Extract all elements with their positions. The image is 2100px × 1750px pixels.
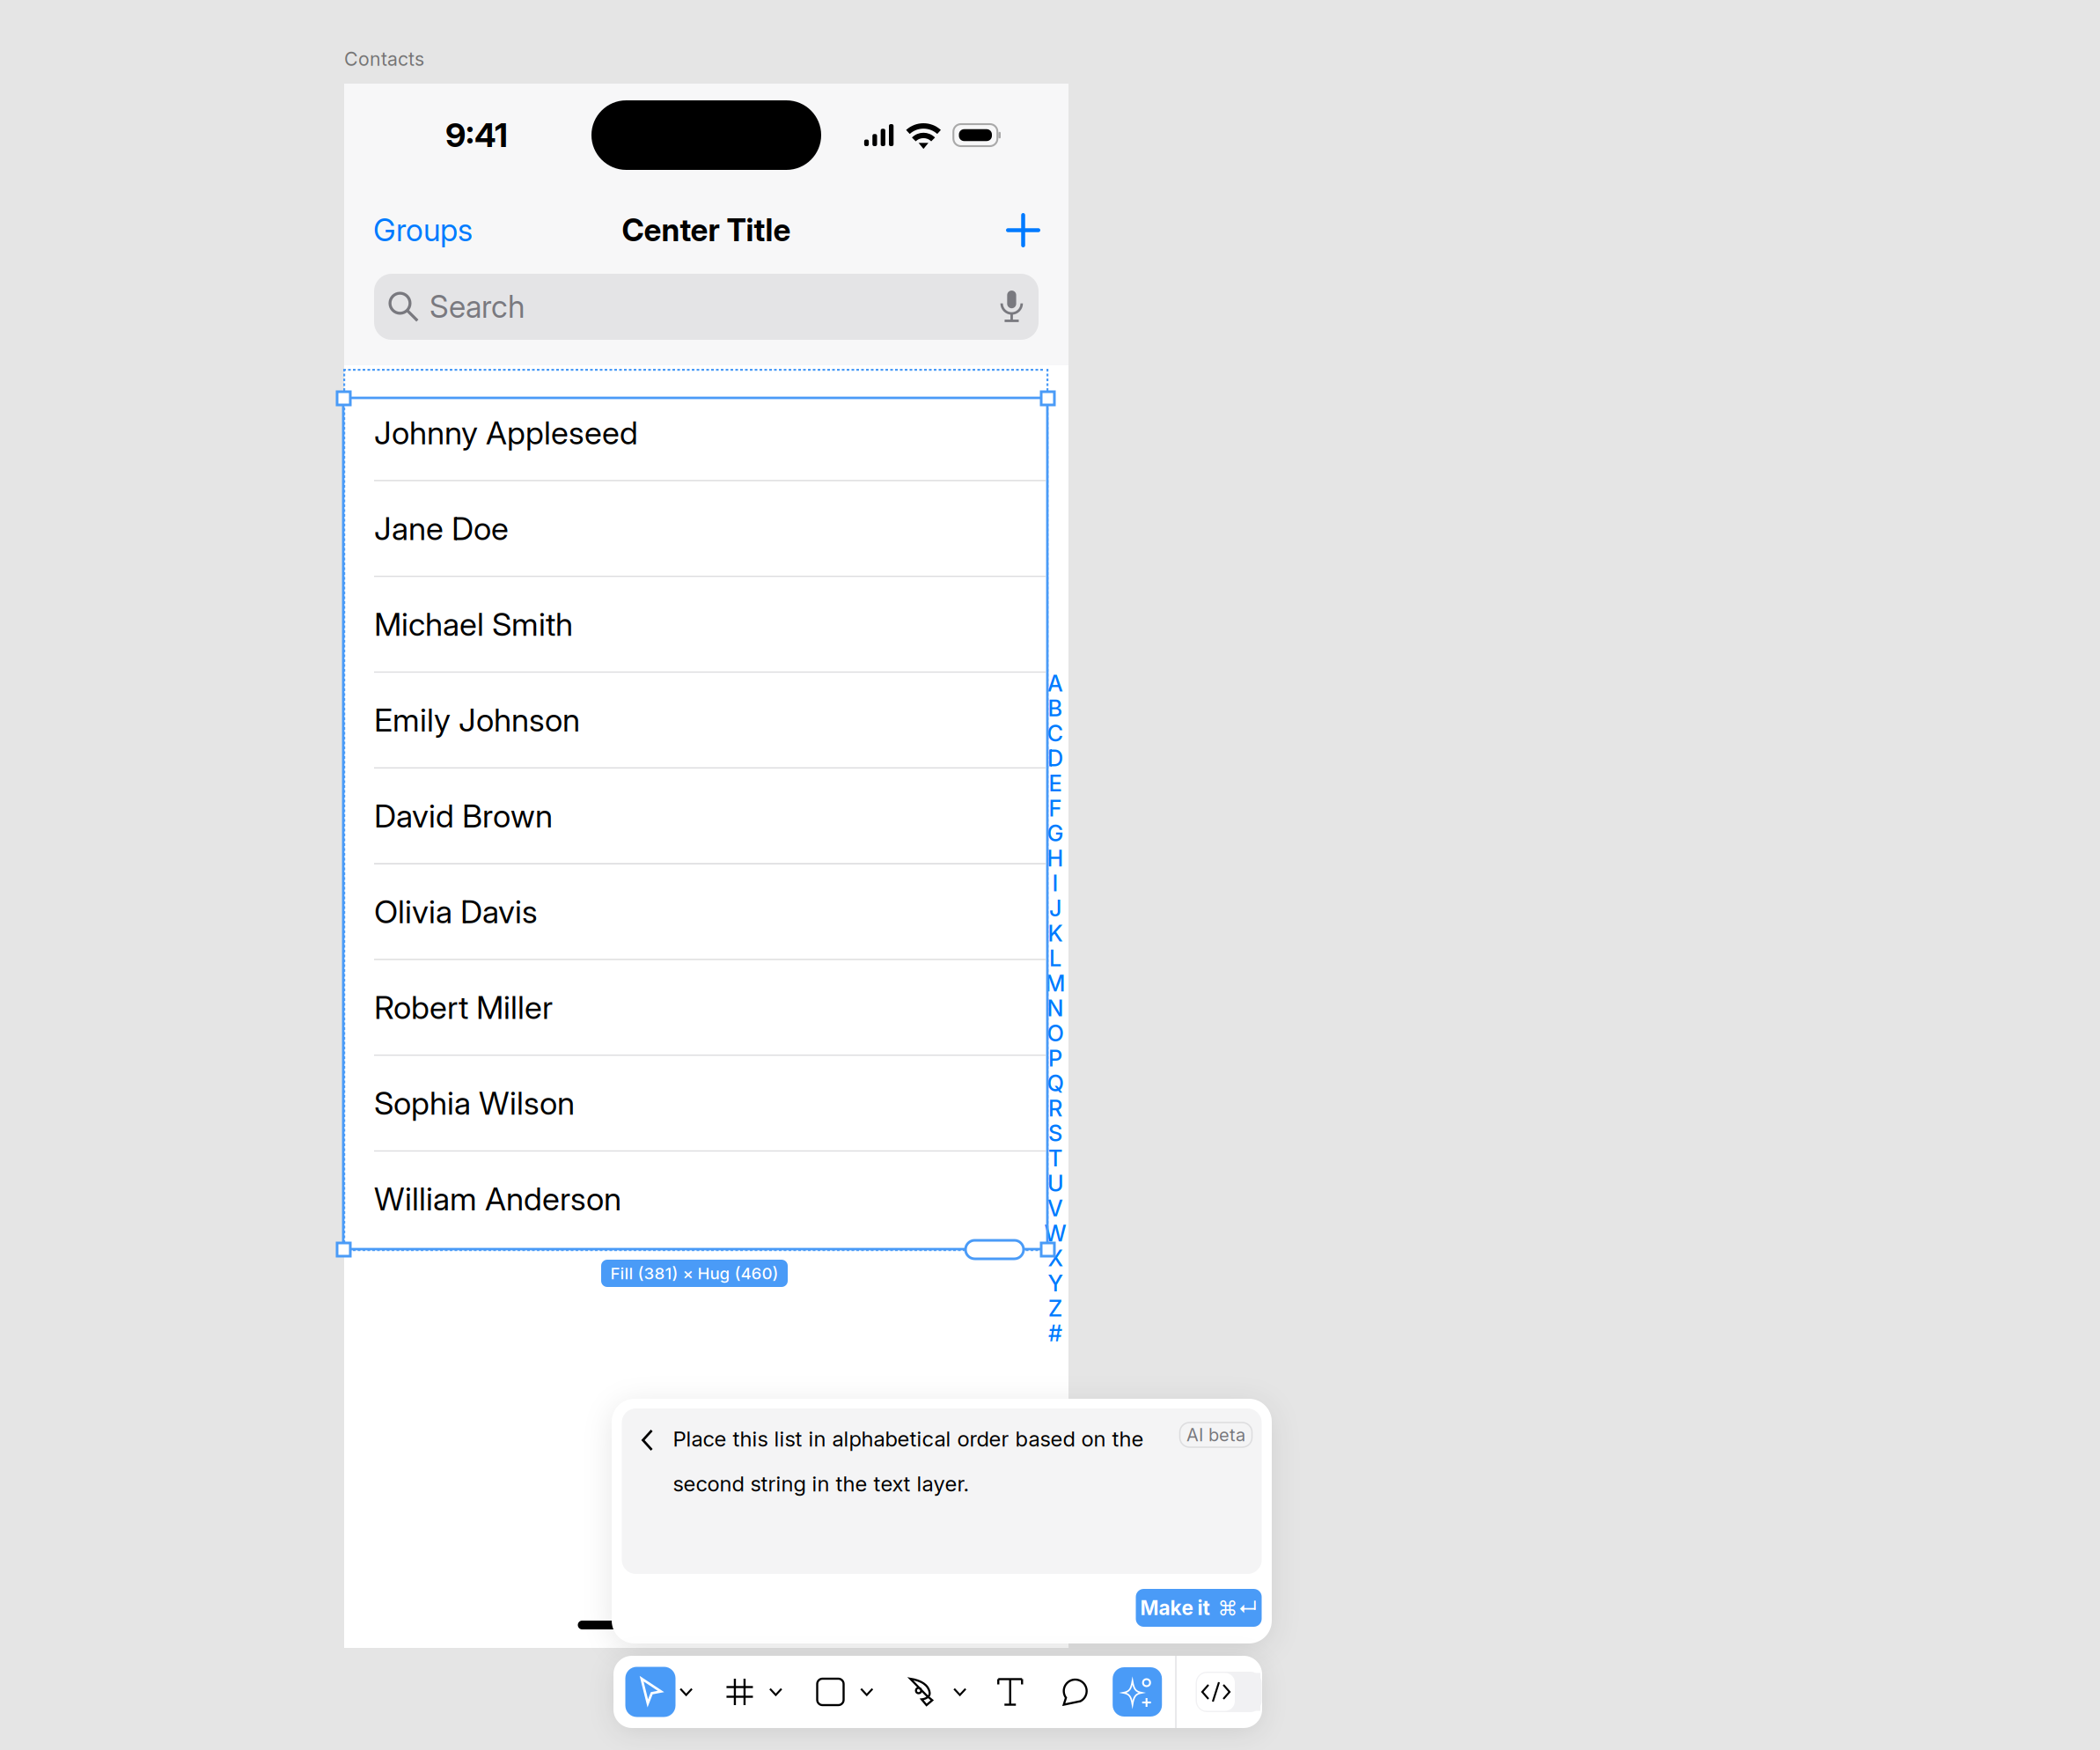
staticText: Center Title [622, 212, 791, 249]
staticText: ⌘↵ [1218, 1596, 1257, 1620]
staticText: K [1048, 920, 1063, 947]
staticText: B [1048, 695, 1063, 722]
staticText: Robert Miller [374, 988, 553, 1027]
staticText: Y [1048, 1270, 1063, 1297]
staticText: Johnny Appleseed [374, 414, 638, 452]
button[interactable]: Olivia Davis [344, 864, 1068, 960]
staticText: Z [1048, 1295, 1062, 1322]
button[interactable]: Robert Miller [344, 960, 1068, 1056]
button[interactable]: William Anderson [344, 1152, 1068, 1248]
staticText: A [1047, 670, 1063, 697]
staticText: Fill (381) × Hug (460) [610, 1263, 778, 1283]
staticText: J [1049, 895, 1061, 922]
button[interactable]: Pen tool options [935, 1656, 967, 1728]
button[interactable]: Frame tool [693, 1656, 753, 1728]
staticText: M [1045, 970, 1065, 997]
staticText: U [1047, 1170, 1063, 1197]
staticText: X [1048, 1245, 1063, 1272]
button[interactable]: Jane Doe [344, 481, 1068, 577]
staticText: David Brown [374, 797, 553, 835]
staticText: second string in the text layer. [673, 1471, 969, 1496]
staticText: Q [1047, 1070, 1064, 1097]
button[interactable]: Shape tool [783, 1656, 844, 1728]
staticText: V [1047, 1195, 1063, 1222]
button[interactable]: Pen tool [874, 1656, 935, 1728]
button[interactable]: Groups [344, 202, 473, 258]
button[interactable]: Add contact [1006, 203, 1068, 257]
staticText: Make it [1140, 1596, 1210, 1620]
staticText: S [1048, 1120, 1062, 1147]
staticText: 9:41 [445, 115, 508, 155]
staticText: Jane Doe [374, 509, 509, 548]
button[interactable]: Frame tool options [753, 1656, 783, 1728]
staticText: N [1047, 995, 1064, 1022]
button[interactable]: David Brown [344, 769, 1068, 864]
staticText: W [1044, 1220, 1066, 1247]
button[interactable]: Emily Johnson [344, 673, 1068, 769]
staticText: Contacts [344, 48, 424, 70]
button[interactable]: Shape tool options [844, 1656, 874, 1728]
staticText: Olivia Davis [374, 892, 538, 931]
button[interactable]: Sophia Wilson [344, 1056, 1068, 1152]
staticText: L [1049, 945, 1061, 972]
button[interactable]: Move tool options [675, 1656, 693, 1728]
button[interactable]: Michael Smith [344, 577, 1068, 673]
staticText: Search [430, 288, 525, 325]
staticText: P [1048, 1045, 1062, 1072]
button[interactable]: Johnny Appleseed [344, 386, 1068, 481]
button[interactable]: Comment tool [1022, 1656, 1087, 1728]
button[interactable]: Make it [1136, 1589, 1262, 1627]
staticText: Groups [373, 212, 473, 249]
staticText: Emily Johnson [374, 701, 580, 739]
staticText: O [1047, 1020, 1064, 1047]
button[interactable]: Text tool [967, 1656, 1022, 1728]
button[interactable]: Back [622, 1408, 655, 1452]
staticText: # [1048, 1320, 1062, 1347]
staticText: R [1048, 1095, 1062, 1122]
button[interactable]: AI tool [1087, 1656, 1162, 1728]
staticText: Michael Smith [374, 605, 573, 643]
button[interactable]: Search [374, 274, 1039, 340]
staticText: Sophia Wilson [374, 1084, 575, 1122]
staticText: William Anderson [374, 1180, 621, 1218]
staticText: AI beta [1186, 1424, 1245, 1446]
staticText: E [1049, 770, 1062, 797]
staticText: G [1047, 820, 1064, 847]
staticText: F [1049, 795, 1062, 822]
staticText: Place this list in alphabetical order ba… [673, 1426, 1144, 1452]
button[interactable]: Dev mode [1177, 1656, 1260, 1728]
staticText: D [1047, 745, 1063, 772]
staticText: H [1047, 845, 1064, 872]
staticText: I [1052, 870, 1058, 897]
button[interactable]: Move tool [615, 1656, 675, 1728]
staticText: C [1047, 720, 1064, 747]
staticText: T [1048, 1145, 1062, 1172]
